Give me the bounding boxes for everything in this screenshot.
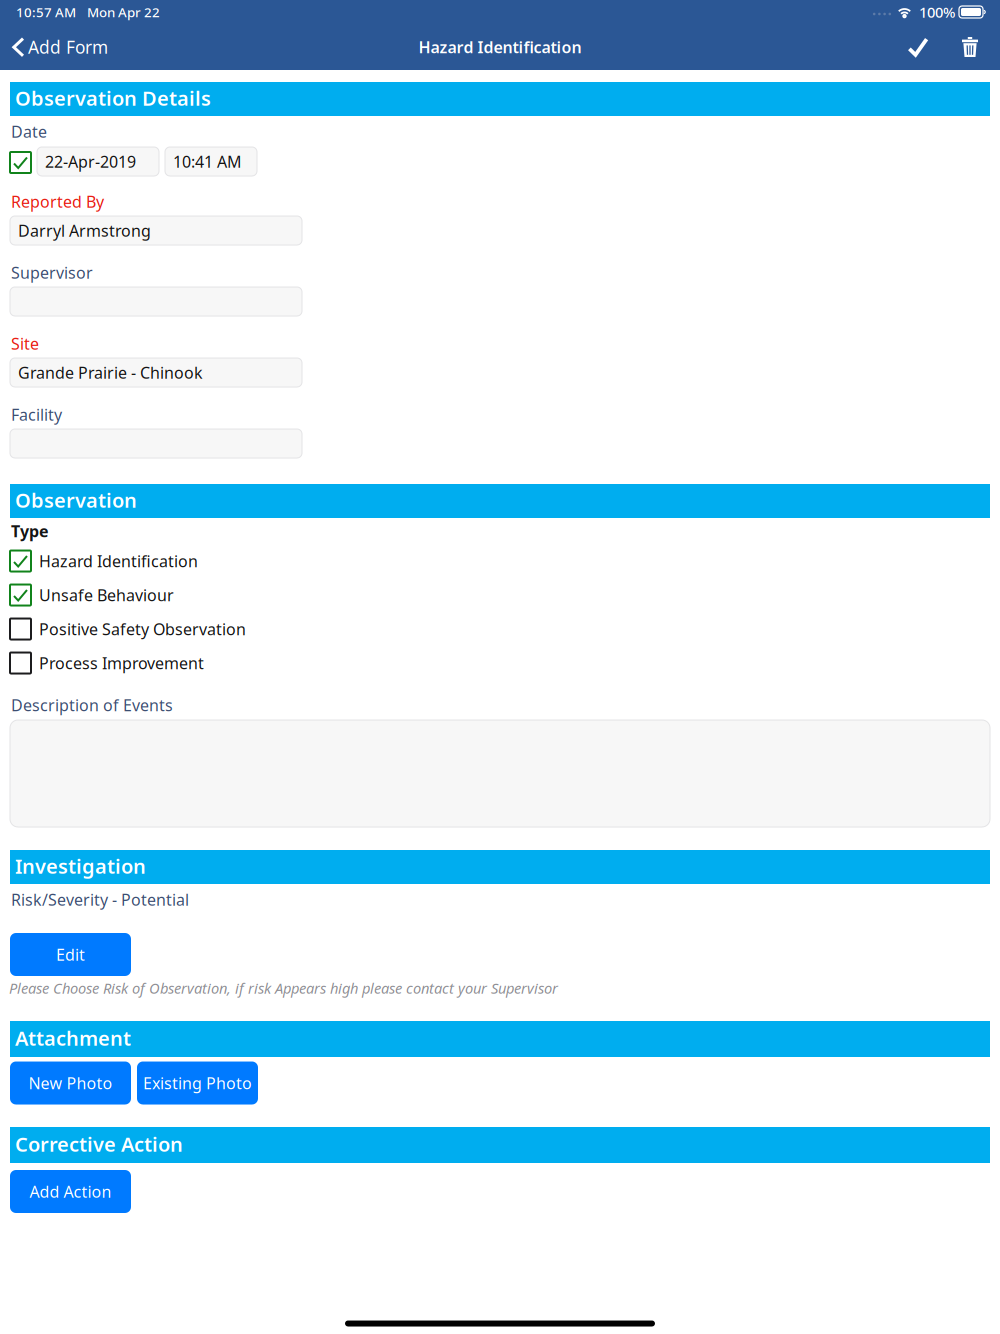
staticText: 10:41 AM — [173, 151, 242, 172]
staticText: Edit — [56, 944, 85, 965]
staticText: Positive Safety Observation — [39, 618, 246, 640]
staticText: Observation Details — [15, 85, 211, 111]
button[interactable]: Positive Safety Observation — [0, 612, 1000, 646]
staticText: 100% — [919, 2, 955, 22]
staticText: Add Form — [28, 35, 108, 58]
staticText: Corrective Action — [15, 1131, 183, 1157]
staticText: Attachment — [15, 1025, 131, 1051]
staticText: Investigation — [15, 853, 146, 879]
staticText: Observation — [15, 487, 137, 513]
staticText: New Photo — [28, 1072, 112, 1094]
staticText: Grande Prairie - Chinook — [18, 362, 203, 383]
staticText: Process Improvement — [39, 652, 204, 674]
staticText: Existing Photo — [143, 1072, 252, 1094]
button[interactable]: New Photo — [10, 1061, 131, 1104]
staticText: Site — [11, 333, 39, 354]
button[interactable]: Process Improvement — [0, 646, 1000, 680]
button[interactable]: Existing Photo — [137, 1061, 258, 1104]
button[interactable]: Save — [888, 24, 948, 70]
staticText: Hazard Identification — [39, 550, 198, 572]
button[interactable]: Add Form — [0, 24, 120, 70]
button[interactable]: Add Action — [10, 1170, 131, 1213]
staticText: Darryl Armstrong — [18, 220, 151, 241]
staticText: Type — [11, 520, 49, 542]
staticText: Reported By — [11, 191, 104, 212]
staticText: Risk/Severity - Potential — [11, 889, 189, 910]
staticText: Supervisor — [11, 262, 93, 283]
staticText: Unsafe Behaviour — [39, 584, 174, 606]
staticText: Mon Apr 22 — [87, 3, 160, 21]
staticText: 22-Apr-2019 — [45, 151, 136, 172]
staticText: Date — [11, 121, 47, 142]
button[interactable]: Unsafe Behaviour — [0, 578, 1000, 612]
button[interactable]: Edit — [10, 933, 131, 976]
staticText: Description of Events — [11, 694, 173, 716]
staticText: Hazard Identification — [418, 36, 581, 58]
staticText: 10:57 AM — [16, 3, 76, 21]
button[interactable]: Delete — [948, 24, 992, 70]
staticText: Add Action — [29, 1181, 111, 1202]
staticText: Please Choose Risk of Observation, if ri… — [9, 978, 558, 998]
button[interactable]: Hazard Identification — [0, 544, 1000, 578]
staticText: Facility — [11, 404, 62, 425]
